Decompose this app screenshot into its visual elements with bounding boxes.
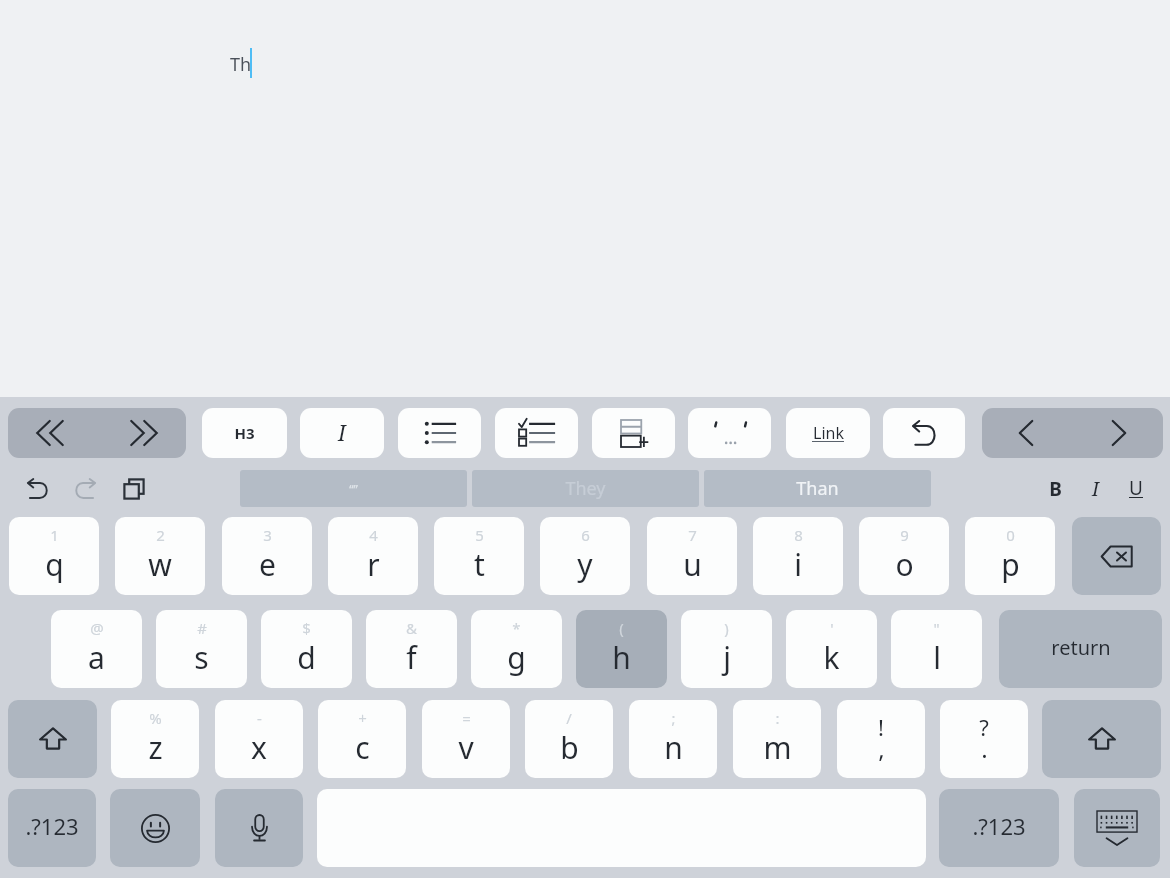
staticText: o — [895, 544, 914, 585]
staticText: .?123 — [972, 811, 1026, 841]
button[interactable]: 0 — [965, 517, 1055, 595]
button[interactable]: ( — [576, 610, 667, 688]
staticText: H3 — [234, 423, 255, 443]
button[interactable]: Undo — [16, 470, 59, 507]
staticText: x — [251, 727, 267, 768]
staticText: v — [458, 727, 474, 768]
staticText: r — [367, 544, 380, 585]
button[interactable]: Numbers and symbols — [939, 789, 1059, 867]
button[interactable]: Hide keyboard — [1074, 789, 1160, 867]
staticText: j — [723, 637, 731, 678]
button[interactable]: Bold — [1035, 470, 1075, 507]
button[interactable]: Voice input — [215, 789, 303, 867]
staticText: n — [664, 727, 683, 768]
button[interactable]: * — [471, 610, 562, 688]
staticText: k — [823, 637, 840, 678]
button[interactable]: 6 — [540, 517, 630, 595]
staticText: f — [406, 637, 417, 678]
staticText: return — [1051, 634, 1111, 661]
staticText: ? — [979, 712, 989, 742]
staticText: q — [45, 544, 64, 585]
button[interactable]: Italic — [1075, 470, 1115, 507]
button[interactable]: ! — [837, 700, 925, 778]
button[interactable]: 7 — [647, 517, 737, 595]
button[interactable]: " — [891, 610, 982, 688]
button[interactable]: - — [215, 700, 303, 778]
button[interactable]: + — [318, 700, 406, 778]
button[interactable]: Numbers and symbols — [8, 789, 96, 867]
staticText: a — [88, 637, 105, 678]
button[interactable]: Undo — [883, 408, 965, 458]
staticText: $ — [302, 618, 311, 638]
button[interactable]: $ — [261, 610, 352, 688]
button[interactable]: ? — [940, 700, 1028, 778]
staticText: 7 — [688, 525, 697, 545]
button[interactable]: / — [525, 700, 613, 778]
button[interactable]: 5 — [434, 517, 524, 595]
button[interactable]: = — [422, 700, 510, 778]
staticText: / — [566, 708, 572, 728]
button[interactable]: Quote — [688, 408, 771, 458]
button[interactable]: ' — [786, 610, 877, 688]
staticText: u — [683, 544, 702, 585]
button[interactable]: Emoji — [110, 789, 200, 867]
staticText: m — [763, 727, 792, 768]
button[interactable]: 1 — [9, 517, 99, 595]
staticText: 4 — [369, 525, 378, 545]
button[interactable]: ) — [681, 610, 772, 688]
staticText: “” — [349, 481, 358, 497]
staticText: y — [577, 544, 593, 585]
staticText: * — [512, 618, 521, 638]
staticText: They — [565, 476, 606, 501]
staticText: @ — [90, 618, 104, 638]
staticText: : — [775, 708, 780, 728]
staticText: w — [148, 544, 172, 585]
button[interactable]: 4 — [328, 517, 418, 595]
button[interactable]: Redo — [64, 470, 107, 507]
button[interactable]: Outdent or indent — [8, 408, 186, 458]
button[interactable]: % — [111, 700, 199, 778]
button[interactable]: : — [733, 700, 821, 778]
staticText: 3 — [263, 525, 272, 545]
button[interactable]: 3 — [222, 517, 312, 595]
staticText: = — [462, 708, 471, 728]
button[interactable]: 2 — [115, 517, 205, 595]
staticText: I — [338, 419, 346, 448]
button[interactable]: Than — [704, 470, 931, 507]
button[interactable]: # — [156, 610, 247, 688]
button[interactable]: Return — [999, 610, 1162, 688]
staticText: s — [194, 637, 209, 678]
staticText: Th — [230, 52, 252, 77]
button[interactable]: Bulleted list — [398, 408, 481, 458]
button[interactable]: Copy — [112, 470, 155, 507]
button[interactable]: & — [366, 610, 457, 688]
staticText: c — [355, 727, 370, 768]
button[interactable]: ; — [629, 700, 717, 778]
button[interactable]: Backspace — [1072, 517, 1161, 595]
button[interactable]: 8 — [753, 517, 843, 595]
button[interactable]: Shift — [1042, 700, 1161, 778]
staticText: Link — [813, 422, 844, 444]
button[interactable]: Insert table — [592, 408, 675, 458]
button[interactable]: Checklist — [495, 408, 578, 458]
button[interactable]: Shift — [8, 700, 97, 778]
staticText: ! — [878, 712, 884, 742]
staticText: z — [148, 727, 163, 768]
staticText: h — [612, 637, 631, 678]
button[interactable]: @ — [51, 610, 142, 688]
button[interactable]: Italic — [300, 408, 384, 458]
button[interactable]: Previous or next — [982, 408, 1163, 458]
staticText: " — [933, 618, 940, 638]
button[interactable]: Heading 3 — [202, 408, 287, 458]
staticText: ) — [724, 618, 729, 638]
staticText: I — [1092, 476, 1099, 502]
button[interactable]: Underline — [1116, 470, 1156, 507]
button[interactable]: 9 — [859, 517, 949, 595]
staticText: 9 — [900, 525, 909, 545]
button[interactable]: Link — [786, 408, 870, 458]
staticText: d — [297, 637, 316, 678]
